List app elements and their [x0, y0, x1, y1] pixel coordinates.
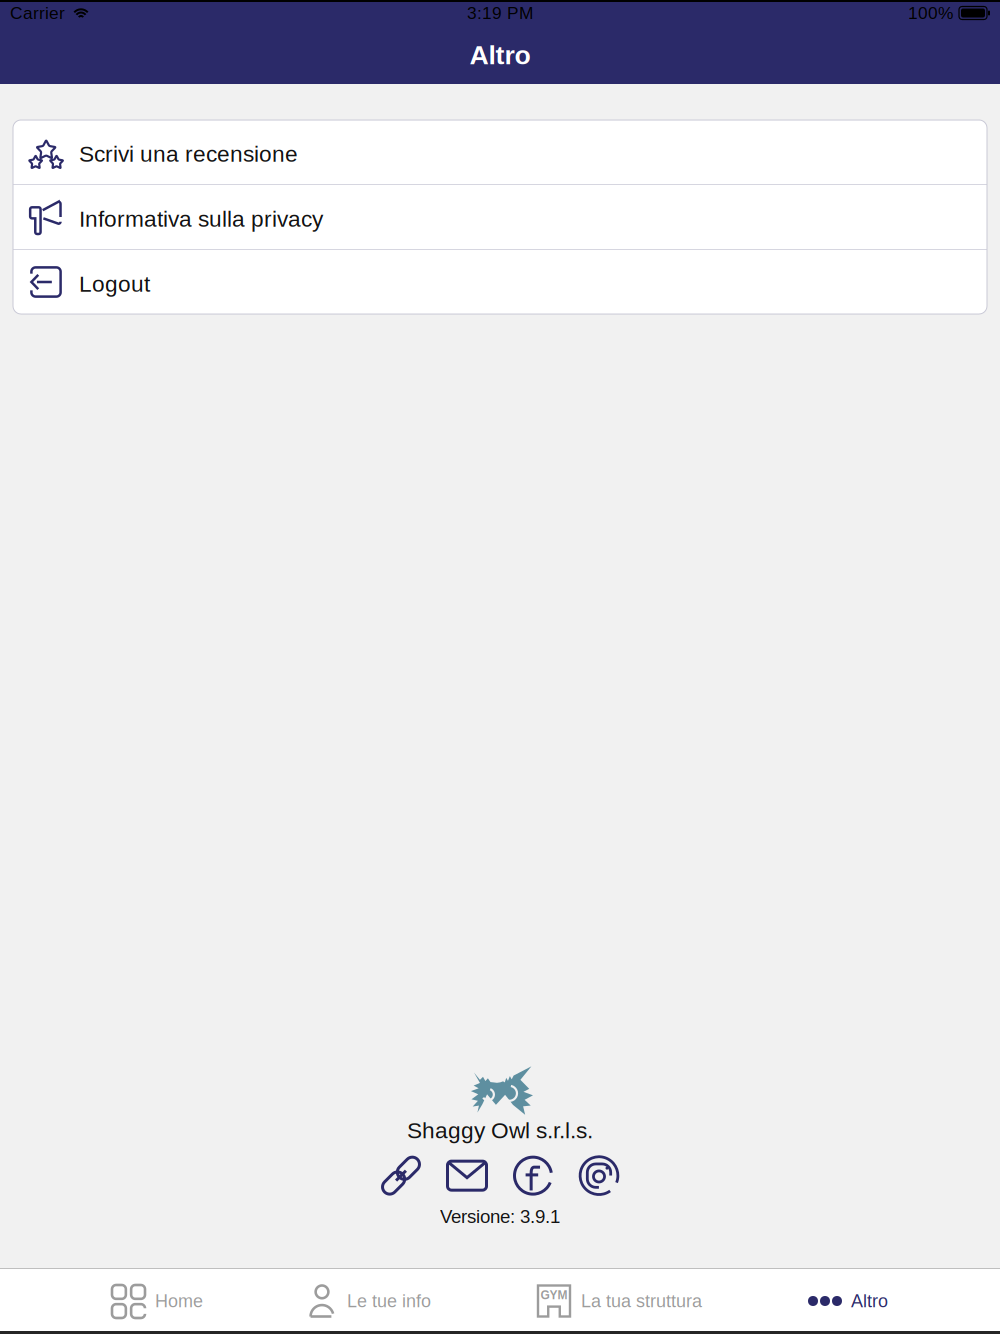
- button[interactable]: GYM: [537, 1269, 702, 1331]
- button[interactable]: Sito web: [380, 1154, 421, 1197]
- button[interactable]: Home: [112, 1269, 203, 1331]
- button[interactable]: Logout: [13, 250, 987, 314]
- button[interactable]: Scrivi una recensione: [13, 120, 987, 184]
- staticText: Home: [155, 1291, 203, 1311]
- staticText: GYM: [540, 1288, 567, 1302]
- staticText: 100%: [908, 3, 953, 23]
- button[interactable]: Facebook: [512, 1154, 553, 1197]
- staticText: 3:19 PM: [467, 3, 533, 23]
- staticText: Altro: [469, 40, 530, 70]
- staticText: Versione: 3.9.1: [440, 1206, 560, 1227]
- staticText: Informativa sulla privacy: [79, 206, 323, 232]
- staticText: Le tue info: [347, 1291, 431, 1311]
- staticText: Scrivi una recensione: [79, 141, 298, 167]
- button[interactable]: Email: [446, 1154, 487, 1197]
- staticText: Logout: [79, 271, 150, 297]
- button[interactable]: Le tue info: [309, 1269, 431, 1331]
- button[interactable]: Instagram: [578, 1154, 619, 1197]
- button[interactable]: Informativa sulla privacy: [13, 185, 987, 249]
- staticText: La tua struttura: [581, 1291, 702, 1311]
- staticText: Altro: [851, 1291, 888, 1311]
- staticText: Shaggy Owl s.r.l.s.: [407, 1118, 593, 1143]
- button[interactable]: Altro: [808, 1269, 888, 1331]
- staticText: Carrier: [10, 3, 65, 23]
